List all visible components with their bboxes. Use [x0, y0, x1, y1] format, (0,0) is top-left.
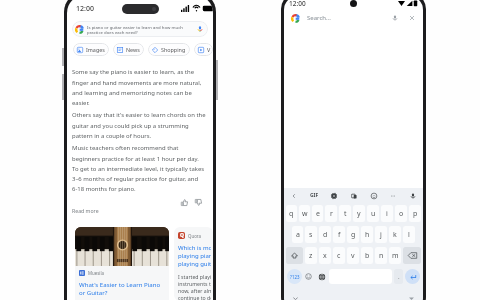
- button[interactable]: s: [305, 226, 317, 243]
- staticText: l: [408, 230, 410, 240]
- staticText: Images: [86, 46, 105, 53]
- button[interactable]: v: [347, 247, 359, 264]
- staticText: Quora: [188, 233, 201, 239]
- button[interactable]: f: [333, 226, 345, 243]
- staticText: t: [344, 209, 347, 219]
- button[interactable]: Shift: [286, 247, 303, 264]
- staticText: b: [365, 251, 370, 261]
- button[interactable]: Q: [174, 227, 213, 300]
- staticText: Which is more: [178, 244, 211, 252]
- button[interactable]: Clipboard: [350, 192, 358, 200]
- staticText: Search...: [307, 14, 331, 22]
- staticText: What's Easier to Learn Piano or Guitar?: [79, 280, 165, 297]
- staticText: Vide: [207, 46, 209, 53]
- button[interactable]: c: [333, 247, 345, 264]
- staticText: i: [386, 209, 388, 219]
- button[interactable]: Muesila: [75, 227, 169, 300]
- button[interactable]: q: [286, 205, 297, 222]
- button[interactable]: Shopping: [148, 43, 190, 56]
- button[interactable]: k: [389, 226, 401, 243]
- button[interactable]: Language: [315, 266, 328, 287]
- staticText: p: [413, 209, 418, 219]
- button[interactable]: Clear: [408, 14, 416, 22]
- staticText: o: [399, 209, 404, 219]
- staticText: instruments th: [178, 280, 211, 287]
- button[interactable]: Like: [180, 198, 189, 207]
- button[interactable]: Read more: [72, 207, 99, 214]
- button[interactable]: Enter: [405, 269, 420, 284]
- button[interactable]: More: [389, 192, 397, 200]
- staticText: Music teachers often recommend that begi…: [72, 144, 206, 193]
- button[interactable]: p: [409, 205, 421, 222]
- staticText: j: [380, 230, 382, 240]
- button[interactable]: n: [375, 247, 387, 264]
- staticText: k: [393, 230, 397, 240]
- staticText: n: [379, 251, 384, 261]
- button[interactable]: o: [395, 205, 407, 222]
- staticText: x: [323, 251, 327, 261]
- staticText: w: [302, 209, 308, 219]
- button[interactable]: m: [389, 247, 401, 264]
- button[interactable]: Dislike: [194, 198, 203, 207]
- button[interactable]: b: [361, 247, 373, 264]
- button[interactable]: Is piano or guitar easier to learn and h…: [72, 21, 208, 37]
- staticText: 12:00: [289, 0, 306, 8]
- staticText: playing guitar: [178, 260, 211, 268]
- button[interactable]: Images: [73, 43, 109, 56]
- button[interactable]: Vide: [194, 43, 213, 56]
- staticText: Some say the piano is easier to learn, a…: [72, 68, 206, 107]
- staticText: q: [289, 209, 294, 219]
- staticText: r: [330, 209, 333, 219]
- staticText: f: [338, 230, 341, 240]
- button[interactable]: d: [319, 226, 331, 243]
- staticText: News: [126, 46, 140, 53]
- button[interactable]: x: [319, 247, 331, 264]
- button[interactable]: t: [339, 205, 351, 222]
- button[interactable]: r: [325, 205, 337, 222]
- button[interactable]: a: [292, 226, 303, 243]
- button[interactable]: j: [375, 226, 387, 243]
- staticText: I started playin: [178, 273, 211, 280]
- staticText: ?123: [290, 274, 300, 280]
- button[interactable]: .: [394, 269, 403, 284]
- button[interactable]: Voice input: [409, 192, 417, 200]
- button[interactable]: Voice search: [196, 25, 204, 33]
- button[interactable]: Sticker: [370, 192, 378, 200]
- staticText: Shopping: [161, 46, 186, 53]
- button[interactable]: w: [299, 205, 310, 222]
- staticText: Is piano or guitar easier to learn and h…: [87, 24, 194, 35]
- staticText: e: [316, 209, 320, 219]
- staticText: now, after alm: [178, 287, 211, 294]
- button[interactable]: y: [353, 205, 365, 222]
- staticText: playing piano: [178, 252, 211, 260]
- button[interactable]: Backspace: [403, 247, 421, 264]
- button[interactable]: GIF: [310, 192, 319, 199]
- staticText: m: [392, 251, 399, 261]
- staticText: .: [398, 273, 400, 281]
- button[interactable]: e: [312, 205, 323, 222]
- staticText: c: [337, 251, 341, 261]
- button[interactable]: News: [113, 43, 144, 56]
- button[interactable]: Voice search: [391, 14, 399, 22]
- staticText: Q: [180, 232, 184, 239]
- button[interactable]: z: [305, 247, 317, 264]
- staticText: y: [357, 209, 361, 219]
- button[interactable]: h: [361, 226, 373, 243]
- button[interactable]: ?123: [287, 269, 302, 284]
- button[interactable]: u: [367, 205, 379, 222]
- button[interactable]: l: [403, 226, 415, 243]
- staticText: d: [323, 230, 328, 240]
- button[interactable]: g: [347, 226, 359, 243]
- staticText: a: [296, 230, 300, 240]
- staticText: Muesila: [88, 270, 105, 276]
- staticText: z: [309, 251, 313, 261]
- staticText: 12:00: [76, 4, 94, 14]
- button[interactable]: Settings: [330, 192, 338, 200]
- button[interactable]: i: [381, 205, 393, 222]
- staticText: s: [309, 230, 313, 240]
- staticText: h: [365, 230, 370, 240]
- button[interactable]: Emoji: [302, 266, 315, 287]
- button[interactable]: Back: [290, 192, 298, 200]
- staticText: u: [371, 209, 376, 219]
